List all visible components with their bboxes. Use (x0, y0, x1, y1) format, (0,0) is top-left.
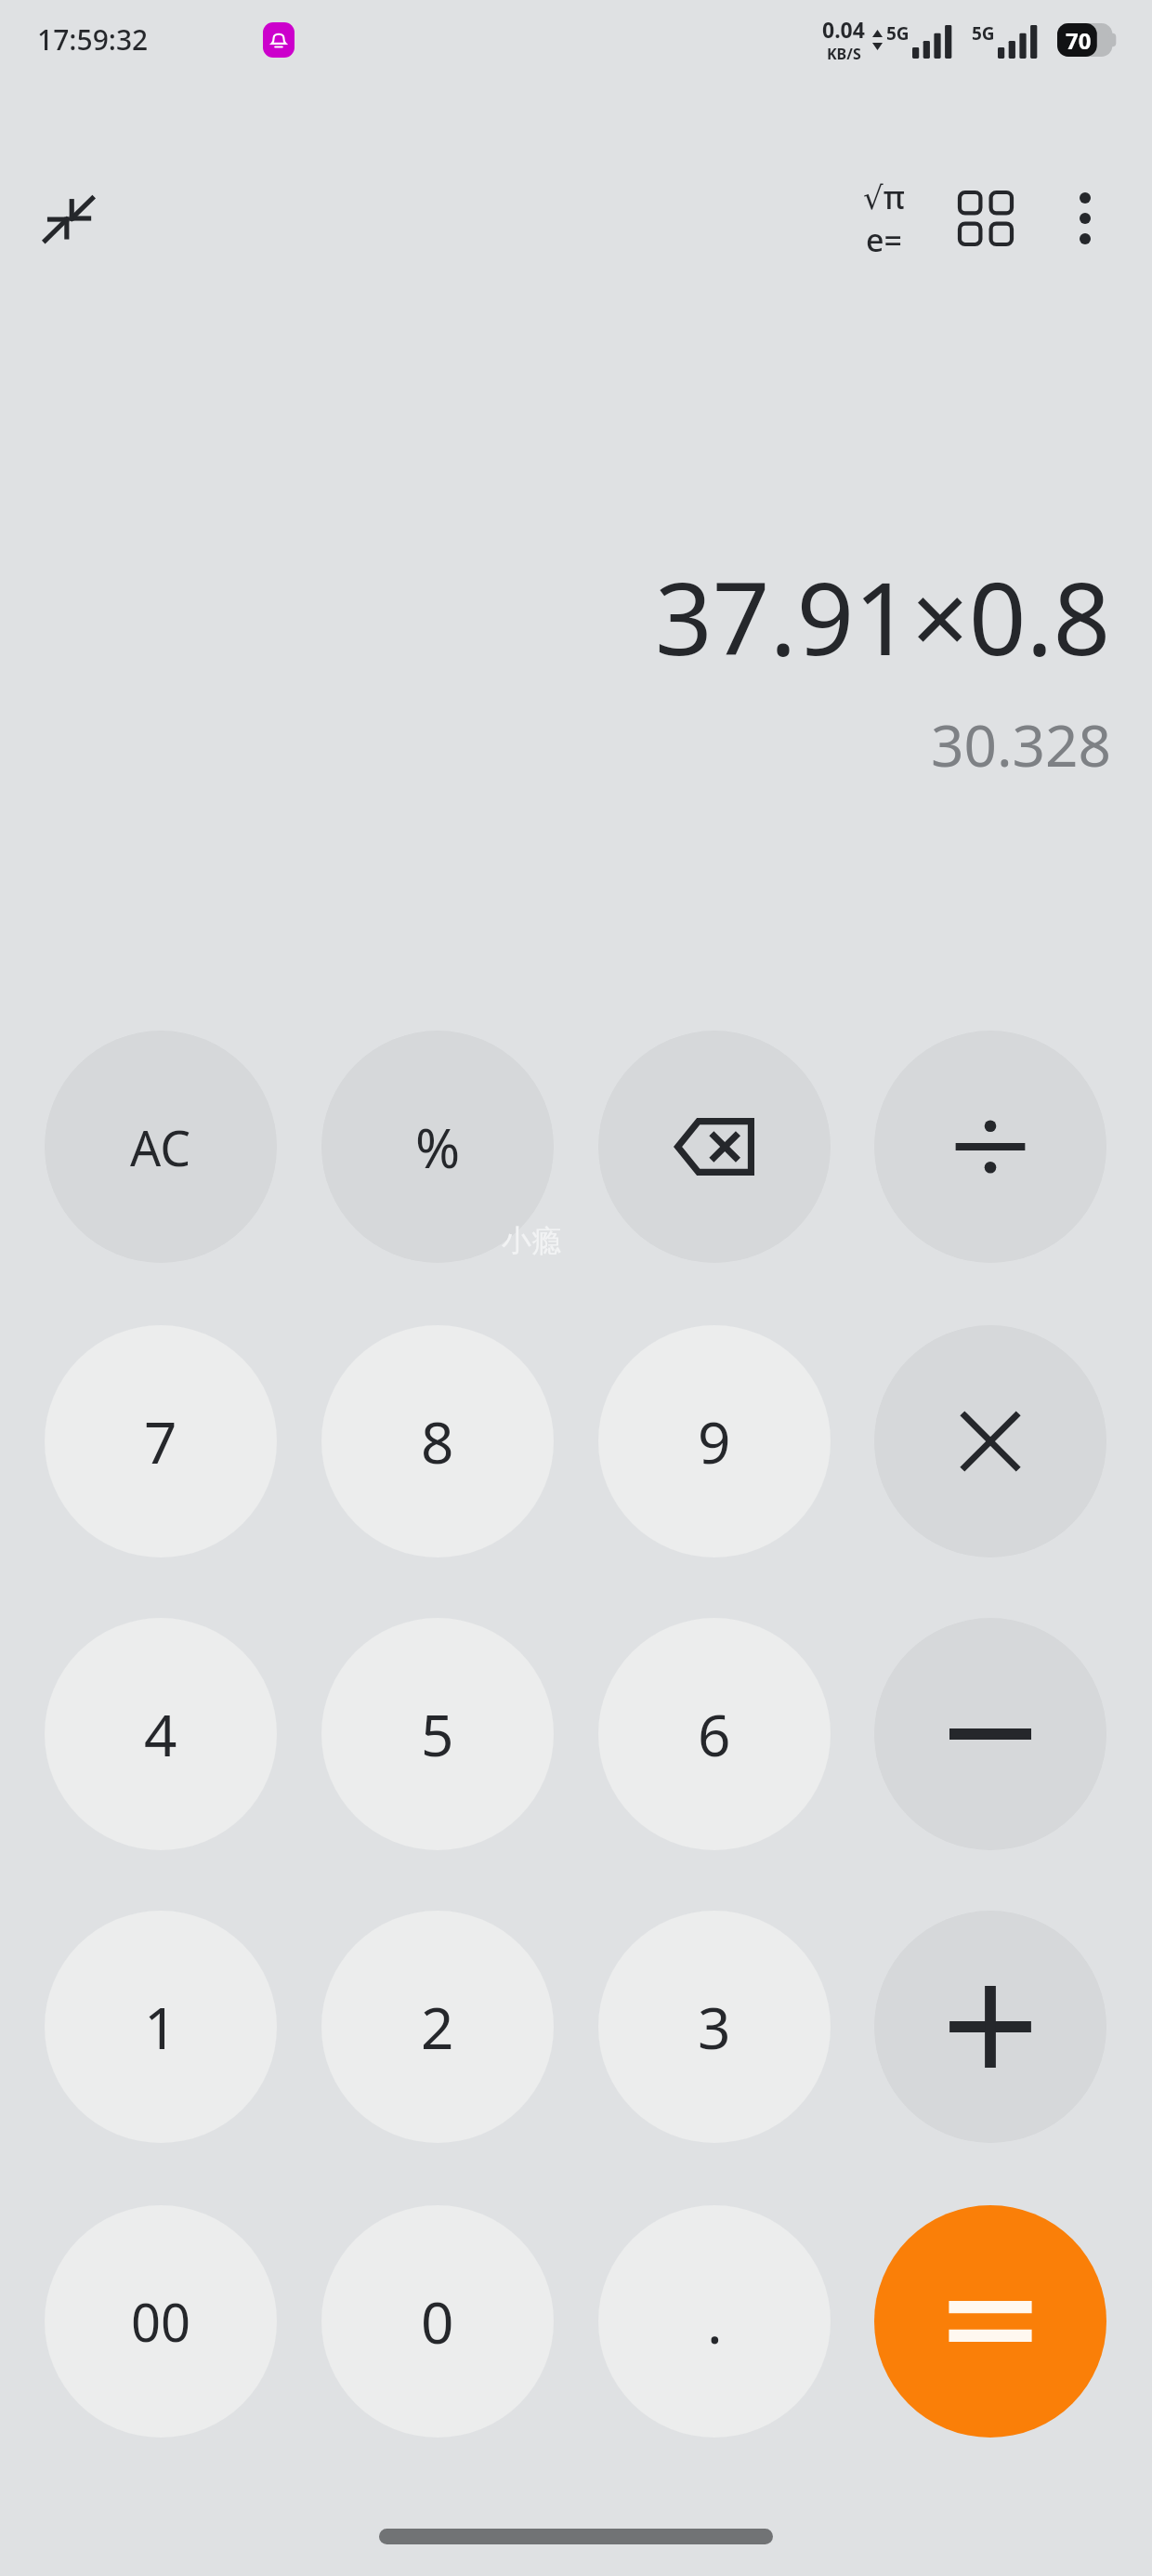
button[interactable]: Divide (874, 1031, 1106, 1263)
button[interactable]: Scientific mode (832, 167, 935, 269)
staticText: % (415, 1111, 461, 1184)
staticText: 70 (1066, 25, 1092, 56)
button[interactable]: Collapse (24, 174, 113, 263)
staticText: 0 (421, 2282, 454, 2360)
button[interactable]: More options (1037, 170, 1133, 267)
staticText: √π (863, 176, 905, 218)
button[interactable]: 8 (321, 1325, 554, 1557)
staticText: AC (130, 1114, 191, 1180)
staticText: 小瘾 (502, 1222, 561, 1259)
button[interactable]: Plus (874, 1911, 1106, 2143)
button[interactable]: Equals (874, 2205, 1106, 2438)
staticText: 37.91×0.8 (655, 548, 1111, 685)
button[interactable]: Multiply (874, 1325, 1106, 1557)
button[interactable]: % (321, 1031, 554, 1263)
button[interactable]: 6 (598, 1618, 831, 1850)
staticText: 17:59:32 (37, 20, 149, 59)
staticText: 3 (698, 1988, 731, 2066)
staticText: KB/S (827, 44, 861, 64)
button[interactable]: 7 (45, 1325, 277, 1557)
staticText: . (707, 2282, 723, 2360)
staticText: 5G (972, 21, 995, 46)
button[interactable]: 1 (45, 1911, 277, 2143)
staticText: 1 (144, 1988, 177, 2066)
button[interactable]: 4 (45, 1618, 277, 1850)
staticText: 30.328 (931, 705, 1111, 783)
staticText: 00 (131, 2286, 191, 2357)
staticText: 8 (421, 1402, 454, 1480)
button[interactable]: AC (45, 1031, 277, 1263)
staticText: 4 (144, 1695, 177, 1773)
staticText: 7 (144, 1402, 177, 1480)
button[interactable]: 3 (598, 1911, 831, 2143)
button[interactable]: 00 (45, 2205, 277, 2438)
staticText: 9 (698, 1402, 731, 1480)
staticText: 2 (421, 1988, 454, 2066)
staticText: 0.04 (822, 15, 865, 44)
button[interactable]: 9 (598, 1325, 831, 1557)
button[interactable]: 5 (321, 1618, 554, 1850)
staticText: 5 (421, 1695, 454, 1773)
button[interactable]: 0 (321, 2205, 554, 2438)
button[interactable]: . (598, 2205, 831, 2438)
button[interactable]: Unit converter (935, 167, 1037, 269)
staticText: e= (866, 218, 902, 261)
button[interactable]: 2 (321, 1911, 554, 2143)
button[interactable]: Minus (874, 1618, 1106, 1850)
staticText: 6 (698, 1695, 731, 1773)
button[interactable]: Backspace (598, 1031, 831, 1263)
staticText: 5G (886, 21, 910, 46)
